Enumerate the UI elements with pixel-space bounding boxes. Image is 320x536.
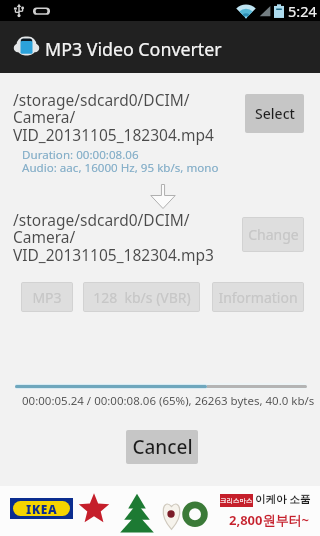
button[interactable]: IKEA [0,486,320,536]
button[interactable]: Select [245,94,304,133]
other: App icon [14,31,39,61]
button[interactable]: MP3 [21,282,73,312]
staticText: /storage/sdcard0/DCIM/ Camera/ VID_20131… [13,89,214,146]
staticText: 크리스마스 [220,497,253,505]
staticText: Change [248,225,299,244]
button[interactable]: Cancel [126,430,198,464]
staticText: 이케아 소품 [255,492,311,506]
button[interactable]: 128 kb/s (VBR) [83,282,200,312]
staticText: IKEA [26,501,58,516]
button[interactable]: Change [242,217,304,252]
staticText: 5:24 [288,1,317,21]
staticText: 128 kb/s (VBR) [93,288,191,307]
staticText: 00:00:05.24 / 00:00:08.06 (65%), 26263 b… [22,393,315,409]
staticText: Information [218,288,298,307]
staticText: 2,800원부터~ [229,511,309,529]
staticText: Select [255,104,295,123]
staticText: /storage/sdcard0/DCIM/ Camera/ VID_20131… [13,209,214,266]
staticText: MP3 Video Converter [45,37,222,61]
staticText: Cancel [132,434,193,460]
staticText: Duration: 00:00:08.06 Audio: aac, 16000 … [22,147,219,176]
button[interactable]: Information [212,282,304,312]
staticText: MP3 [32,288,62,307]
